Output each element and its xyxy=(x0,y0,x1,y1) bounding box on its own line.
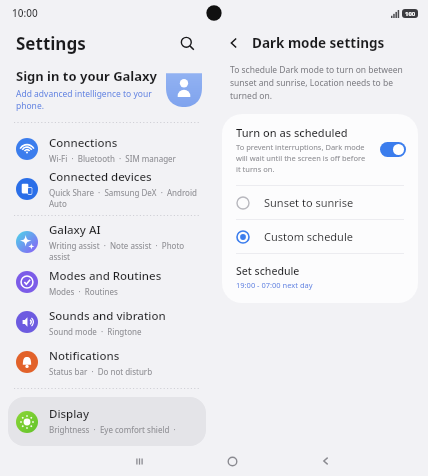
staticText: Set schedule xyxy=(236,264,300,278)
staticText: Display xyxy=(49,406,89,422)
button[interactable]: Modes and Routines xyxy=(0,262,214,302)
staticText: Connected devices xyxy=(49,169,152,185)
button[interactable]: Back xyxy=(222,31,246,55)
staticText: Modes · Routines xyxy=(49,286,118,297)
staticText: Sound mode · Ringtone xyxy=(49,326,142,337)
staticText: To schedule Dark mode to turn on between… xyxy=(230,64,412,102)
staticText: Sounds and vibration xyxy=(49,308,166,324)
button[interactable]: Custom schedule xyxy=(222,220,418,253)
button[interactable]: Display xyxy=(8,397,206,446)
button[interactable]: Recents xyxy=(93,446,186,476)
staticText: Sunset to sunrise xyxy=(264,195,354,210)
button[interactable]: Turn on as scheduled toggle xyxy=(380,142,406,157)
button[interactable]: Set schedule xyxy=(222,254,418,303)
staticText: Settings xyxy=(16,32,86,55)
button[interactable]: Galaxy AI xyxy=(0,222,214,262)
staticText: Connections xyxy=(49,135,118,151)
staticText: To prevent interruptions, Dark mode will… xyxy=(236,142,370,174)
button[interactable]: Turn on as scheduled xyxy=(222,114,418,185)
staticText: Modes and Routines xyxy=(49,268,162,284)
button[interactable]: Back xyxy=(279,446,372,476)
staticText: Brightness · Eye comfort shield · Naviga… xyxy=(49,424,196,437)
staticText: Dark mode settings xyxy=(252,34,385,52)
staticText: Add advanced intelligence to your phone. xyxy=(16,88,166,112)
staticText: 10:00 xyxy=(12,6,38,20)
staticText: Custom schedule xyxy=(264,229,353,244)
button[interactable]: Connected devices xyxy=(0,169,214,209)
staticText: Sign in to your Galaxy xyxy=(16,67,157,85)
button[interactable]: Sign in to your Galaxy xyxy=(0,60,214,118)
button[interactable]: Home xyxy=(186,446,279,476)
staticText: Wi-Fi · Bluetooth · SIM manager xyxy=(49,153,176,164)
staticText: Writing assist · Note assist · Photo ass… xyxy=(49,240,202,262)
button[interactable]: Sunset to sunrise xyxy=(222,186,418,219)
staticText: Notifications xyxy=(49,348,120,364)
staticText: 19:00 - 07:00 next day xyxy=(236,280,313,290)
button[interactable]: Sounds and vibration xyxy=(0,302,214,342)
staticText: Status bar · Do not disturb xyxy=(49,366,153,377)
staticText: Galaxy AI xyxy=(49,222,101,238)
button[interactable]: Search xyxy=(174,30,200,56)
staticText: Quick Share · Samsung DeX · Android Auto xyxy=(49,187,202,209)
staticText: Turn on as scheduled xyxy=(236,125,348,140)
button[interactable]: Notifications xyxy=(0,342,214,382)
button[interactable]: Connections xyxy=(0,129,214,169)
staticText: 100 xyxy=(405,10,416,18)
